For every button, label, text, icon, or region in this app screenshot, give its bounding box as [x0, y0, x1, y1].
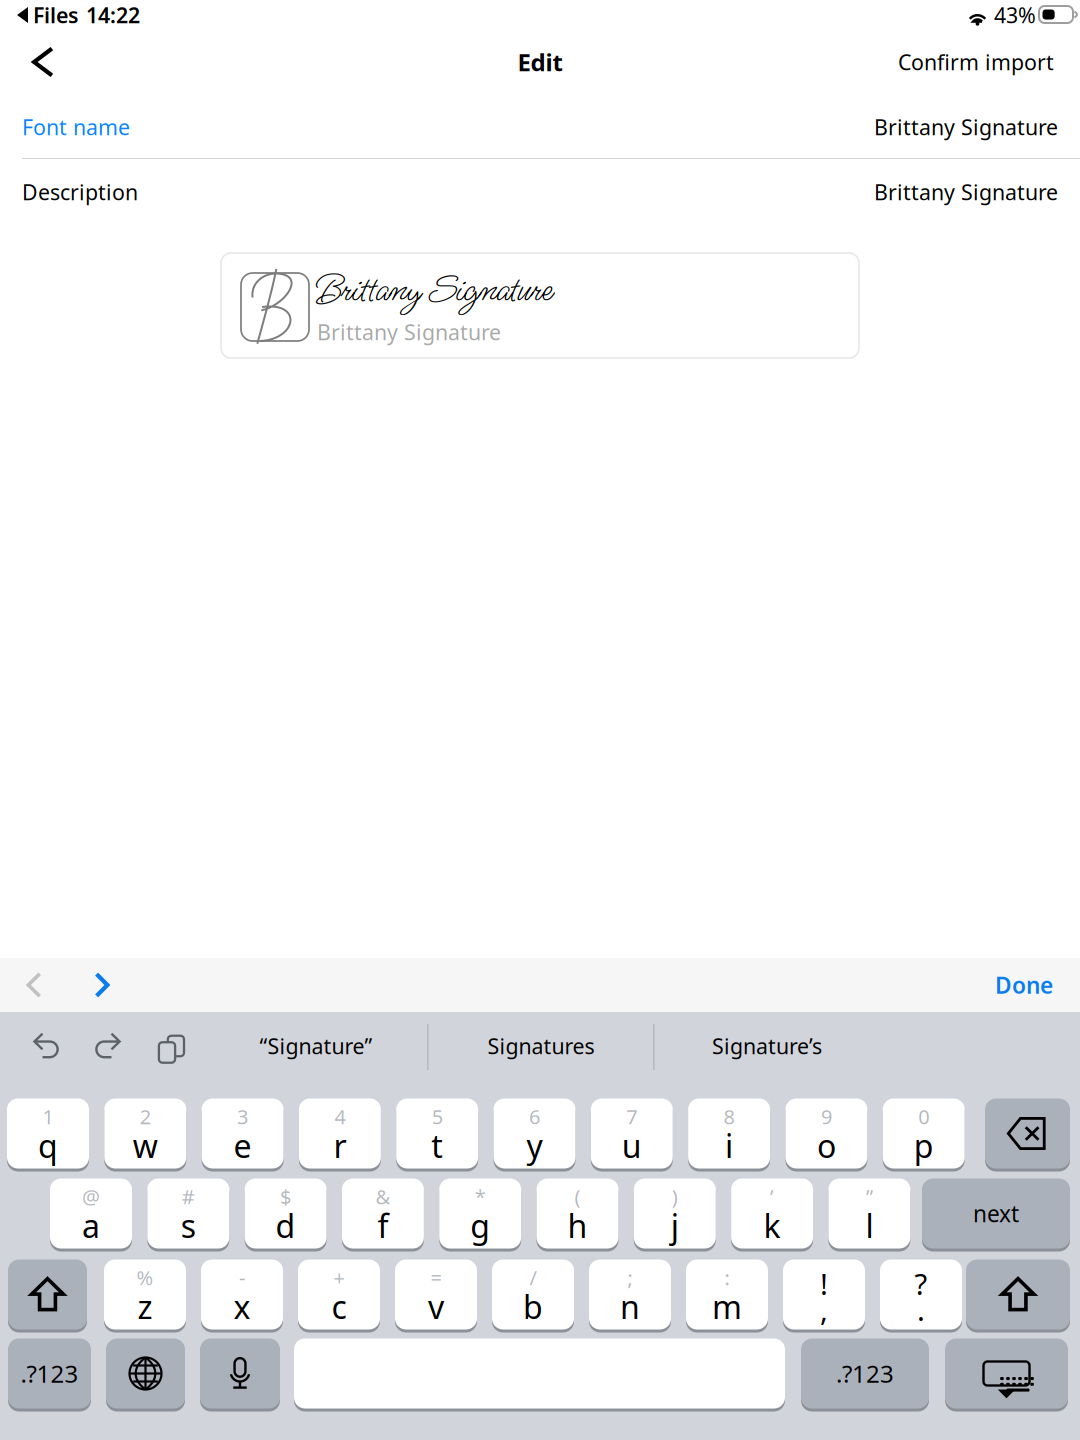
button[interactable]: Description: [0, 159, 1080, 225]
button[interactable]: (: [536, 1177, 618, 1250]
button[interactable]: !: [783, 1258, 865, 1331]
button[interactable]: Shift: [8, 1258, 87, 1331]
staticText: o: [817, 1124, 836, 1167]
staticText: z: [137, 1285, 152, 1328]
button[interactable]: +: [298, 1258, 380, 1331]
button[interactable]: 3: [202, 1097, 284, 1170]
staticText: y: [526, 1124, 542, 1167]
staticText: .?123: [836, 1358, 894, 1389]
staticText: 9: [821, 1103, 832, 1130]
button[interactable]: -: [201, 1258, 283, 1331]
button[interactable]: $: [245, 1177, 327, 1250]
staticText: next: [973, 1198, 1019, 1228]
staticText: 5: [432, 1103, 443, 1130]
button[interactable]: 6: [493, 1097, 575, 1170]
staticText: q: [38, 1124, 58, 1167]
staticText: *: [475, 1183, 486, 1210]
staticText: d: [276, 1204, 296, 1247]
button[interactable]: Done: [943, 958, 1053, 1012]
staticText: 1: [42, 1103, 53, 1130]
button[interactable]: Next field: [68, 958, 136, 1012]
staticText: e: [234, 1124, 252, 1167]
button[interactable]: 7: [591, 1097, 673, 1170]
button[interactable]: Font name: [0, 94, 1080, 158]
staticText: ;: [627, 1264, 632, 1291]
staticText: 0: [918, 1103, 929, 1130]
staticText: j: [671, 1204, 679, 1247]
staticText: .?123: [20, 1358, 78, 1389]
staticText: @: [82, 1183, 100, 1210]
button[interactable]: Shift: [966, 1258, 1070, 1331]
button[interactable]: Undo: [19, 1012, 75, 1080]
staticText: 8: [724, 1103, 735, 1130]
button[interactable]: 0: [883, 1097, 965, 1170]
button[interactable]: @: [50, 1177, 132, 1250]
button[interactable]: Confirm import: [878, 30, 1074, 94]
button[interactable]: Space: [294, 1337, 785, 1410]
staticText: -: [239, 1264, 245, 1291]
staticText: Brittany Signature: [317, 318, 501, 346]
button[interactable]: /: [492, 1258, 574, 1331]
button[interactable]: &: [342, 1177, 424, 1250]
button[interactable]: Back: [3, 30, 83, 94]
staticText: +: [333, 1264, 344, 1291]
staticText: :: [724, 1264, 729, 1291]
button[interactable]: 2: [104, 1097, 186, 1170]
staticText: l: [865, 1204, 873, 1247]
staticText: Signatures: [487, 1032, 594, 1060]
button[interactable]: Previous field: [0, 958, 68, 1012]
staticText: Font name: [22, 113, 130, 141]
button[interactable]: Paste: [139, 1012, 195, 1080]
button[interactable]: ?: [880, 1258, 962, 1331]
button[interactable]: #: [147, 1177, 229, 1250]
button[interactable]: *: [439, 1177, 521, 1250]
button[interactable]: 1: [7, 1097, 89, 1170]
button[interactable]: %: [104, 1258, 186, 1331]
staticText: /: [529, 1264, 536, 1291]
button[interactable]: 9: [785, 1097, 867, 1170]
staticText: s: [181, 1204, 196, 1247]
staticText: ?: [914, 1264, 927, 1303]
button[interactable]: 8: [688, 1097, 770, 1170]
staticText: c: [331, 1285, 346, 1328]
staticText: 7: [626, 1103, 637, 1130]
staticText: &: [375, 1183, 390, 1210]
staticText: u: [622, 1124, 642, 1167]
button[interactable]: ”: [828, 1177, 910, 1250]
button[interactable]: Next keyboard: [106, 1337, 185, 1410]
button[interactable]: next: [922, 1177, 1070, 1250]
staticText: Files: [33, 1, 79, 29]
staticText: ,: [820, 1290, 828, 1329]
staticText: Brittany Signature: [874, 178, 1058, 206]
staticText: 3: [237, 1103, 248, 1130]
button[interactable]: ): [634, 1177, 716, 1250]
button[interactable]: Dictation: [200, 1337, 280, 1410]
button[interactable]: 4: [299, 1097, 381, 1170]
staticText: a: [82, 1204, 100, 1247]
button[interactable]: ;: [589, 1258, 671, 1331]
button[interactable]: Backspace: [985, 1097, 1070, 1170]
button[interactable]: .?123: [8, 1337, 91, 1410]
button[interactable]: ’: [731, 1177, 813, 1250]
staticText: Done: [995, 970, 1053, 1000]
button[interactable]: 5: [396, 1097, 478, 1170]
staticText: 14:22: [86, 1, 140, 29]
button[interactable]: “Signature”: [208, 1012, 424, 1080]
staticText: %: [136, 1264, 153, 1291]
staticText: ): [672, 1183, 678, 1210]
staticText: r: [333, 1124, 346, 1167]
button[interactable]: Signatures: [429, 1012, 653, 1080]
staticText: g: [470, 1204, 490, 1247]
button[interactable]: .?123: [801, 1337, 929, 1410]
button[interactable]: Hide keyboard: [945, 1337, 1068, 1410]
button[interactable]: :: [686, 1258, 768, 1331]
staticText: ’: [770, 1183, 774, 1210]
staticText: t: [431, 1124, 443, 1167]
staticText: Confirm import: [898, 48, 1054, 76]
button[interactable]: Redo: [79, 1012, 135, 1080]
staticText: $: [280, 1183, 291, 1210]
button[interactable]: =: [395, 1258, 477, 1331]
button[interactable]: Signature’s: [655, 1012, 879, 1080]
staticText: (: [574, 1183, 580, 1210]
staticText: v: [428, 1285, 444, 1328]
